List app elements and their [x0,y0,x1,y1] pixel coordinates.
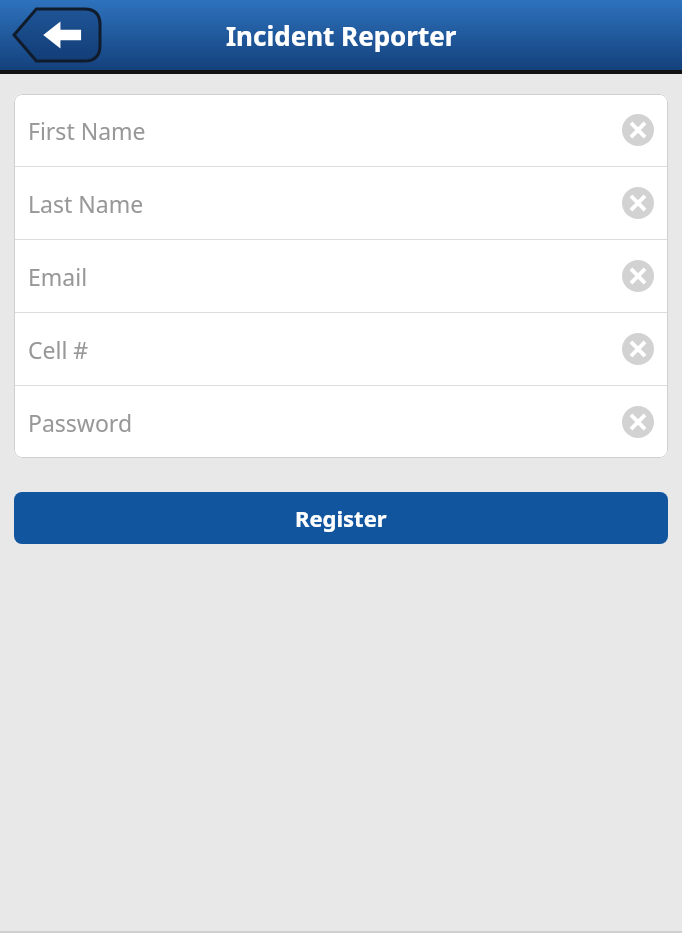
staticText: Register [295,503,387,533]
button[interactable]: Clear text [622,114,654,146]
staticText: Email [28,261,622,292]
button[interactable]: Clear text [622,260,654,292]
staticText: Password [28,407,622,438]
button[interactable]: Password [14,386,668,458]
staticText: First Name [28,115,622,146]
staticText: Last Name [28,188,622,219]
staticText: Incident Reporter [226,18,457,53]
button[interactable]: Clear text [622,187,654,219]
button[interactable]: Back [14,9,100,61]
button[interactable]: Register [14,492,668,544]
button[interactable]: First Name [14,94,668,166]
button[interactable]: Email [14,240,668,312]
button[interactable]: Cell # [14,313,668,385]
button[interactable]: Last Name [14,167,668,239]
button[interactable]: Clear text [622,333,654,365]
staticText: Cell # [28,334,622,365]
button[interactable]: Clear text [622,406,654,438]
